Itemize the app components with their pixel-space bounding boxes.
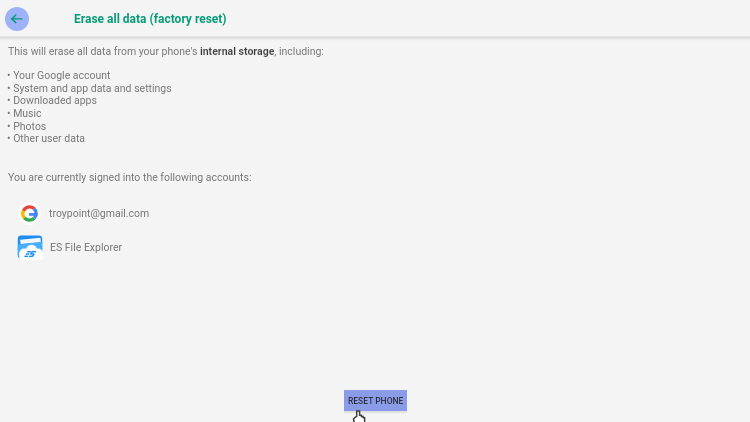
button[interactable]: ES File Explorer: [0, 233, 750, 260]
staticText: RESET PHONE: [348, 396, 404, 406]
staticText: Erase all data (factory reset): [74, 12, 227, 26]
staticText: • System and app data and settings: [7, 82, 172, 94]
button[interactable]: RESET PHONE: [344, 390, 407, 411]
button[interactable]: Back: [5, 7, 29, 31]
staticText: troypoint@gmail.com: [49, 207, 150, 219]
staticText: ES File Explorer: [50, 241, 123, 253]
staticText: • Music: [7, 107, 42, 119]
staticText: • Photos: [7, 120, 47, 132]
staticText: You are currently signed into the follow…: [8, 171, 252, 183]
staticText: This will erase all data from your phone…: [8, 45, 324, 57]
staticText: • Other user data: [7, 132, 86, 144]
staticText: • Your Google account: [7, 69, 111, 81]
staticText: • Downloaded apps: [7, 94, 97, 106]
button[interactable]: troypoint@gmail.com: [0, 200, 750, 226]
